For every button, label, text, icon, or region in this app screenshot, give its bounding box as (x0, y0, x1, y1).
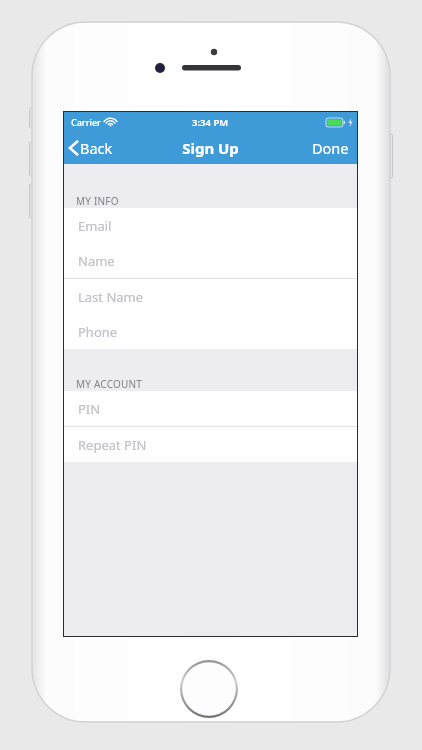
staticText: Name (78, 252, 115, 270)
button[interactable]: Repeat PIN (64, 427, 357, 462)
staticText: Carrier (71, 116, 101, 128)
button[interactable]: Last Name (64, 279, 357, 314)
button[interactable]: Back (64, 134, 121, 162)
staticText: PIN (78, 400, 101, 418)
staticText: Back (80, 138, 113, 158)
staticText: Last Name (78, 288, 144, 306)
staticText: Phone (78, 323, 118, 341)
staticText: 3:34 PM (192, 116, 229, 129)
staticText: Repeat PIN (78, 436, 147, 454)
staticText: Email (78, 217, 112, 235)
button[interactable]: PIN (64, 391, 357, 426)
staticText: Sign Up (182, 138, 239, 158)
staticText: MY ACCOUNT (76, 377, 143, 391)
button[interactable]: Name (64, 243, 357, 278)
button[interactable]: Phone (64, 314, 357, 349)
staticText: Done (312, 138, 349, 158)
button[interactable]: Done (304, 134, 357, 162)
button[interactable]: Email (64, 208, 357, 243)
staticText: MY INFO (76, 194, 119, 208)
